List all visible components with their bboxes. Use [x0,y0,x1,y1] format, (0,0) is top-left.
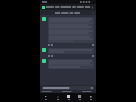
button[interactable]: Menu [40,10,96,15]
button[interactable]: Secure connection [42,6,45,9]
button[interactable]: Back [40,93,52,102]
button[interactable]: Bookmarks [74,93,85,102]
button[interactable]: Sender avatar [42,17,46,21]
button[interactable]: Menu [91,11,94,14]
button[interactable] [48,59,94,69]
button[interactable]: Sender avatar [42,48,46,52]
button[interactable]: More options [91,6,94,9]
button[interactable]: Menu [85,93,96,102]
button[interactable]: Send [42,86,94,90]
button[interactable]: Tabs [63,93,74,102]
button[interactable] [48,48,94,54]
button[interactable]: Sender avatar [42,59,46,63]
button[interactable] [48,17,94,43]
button[interactable] [46,6,90,8]
button[interactable]: Home [52,93,63,102]
